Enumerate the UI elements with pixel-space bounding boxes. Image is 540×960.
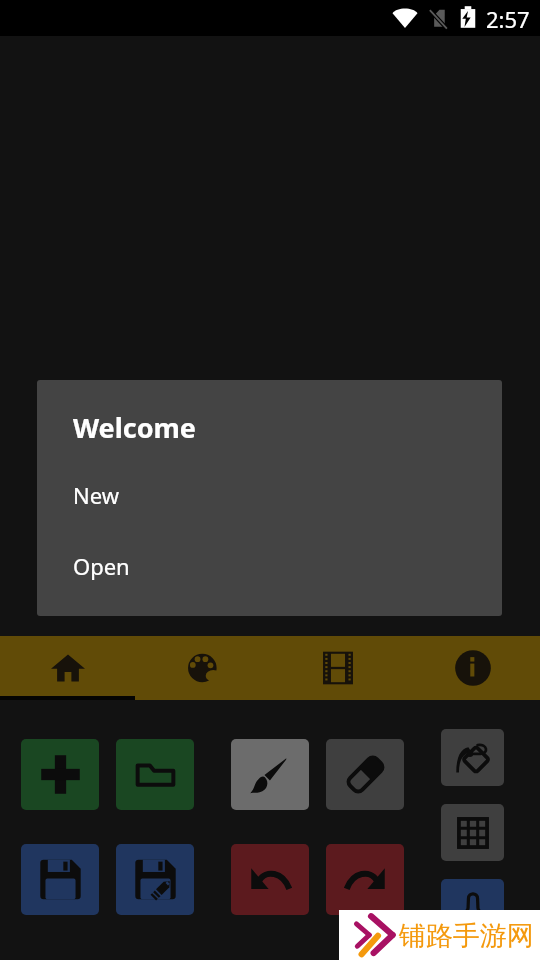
button[interactable]: Fill [441,729,504,786]
button[interactable]: Undo [231,844,309,915]
button[interactable]: Film [270,636,405,700]
button[interactable]: New [37,473,502,517]
button[interactable]: Open [37,544,502,588]
staticText: Open [73,551,130,581]
button[interactable]: Brush [231,739,309,810]
button[interactable]: New [21,739,99,810]
staticText: Welcome [73,409,196,446]
button[interactable]: Redo [326,844,404,915]
staticText: New [73,480,119,510]
staticText: 铺路手游网 [399,919,534,953]
button[interactable]: Stamp [441,879,504,936]
button[interactable]: Save As [116,844,194,915]
staticText: 2:57 [486,4,530,34]
button[interactable]: Grid [441,804,504,861]
button[interactable]: Open [116,739,194,810]
button[interactable]: Home [0,636,135,700]
button[interactable]: Eraser [326,739,404,810]
button[interactable]: Save [21,844,99,915]
button[interactable]: Palette [135,636,270,700]
button[interactable]: Info [405,636,540,700]
